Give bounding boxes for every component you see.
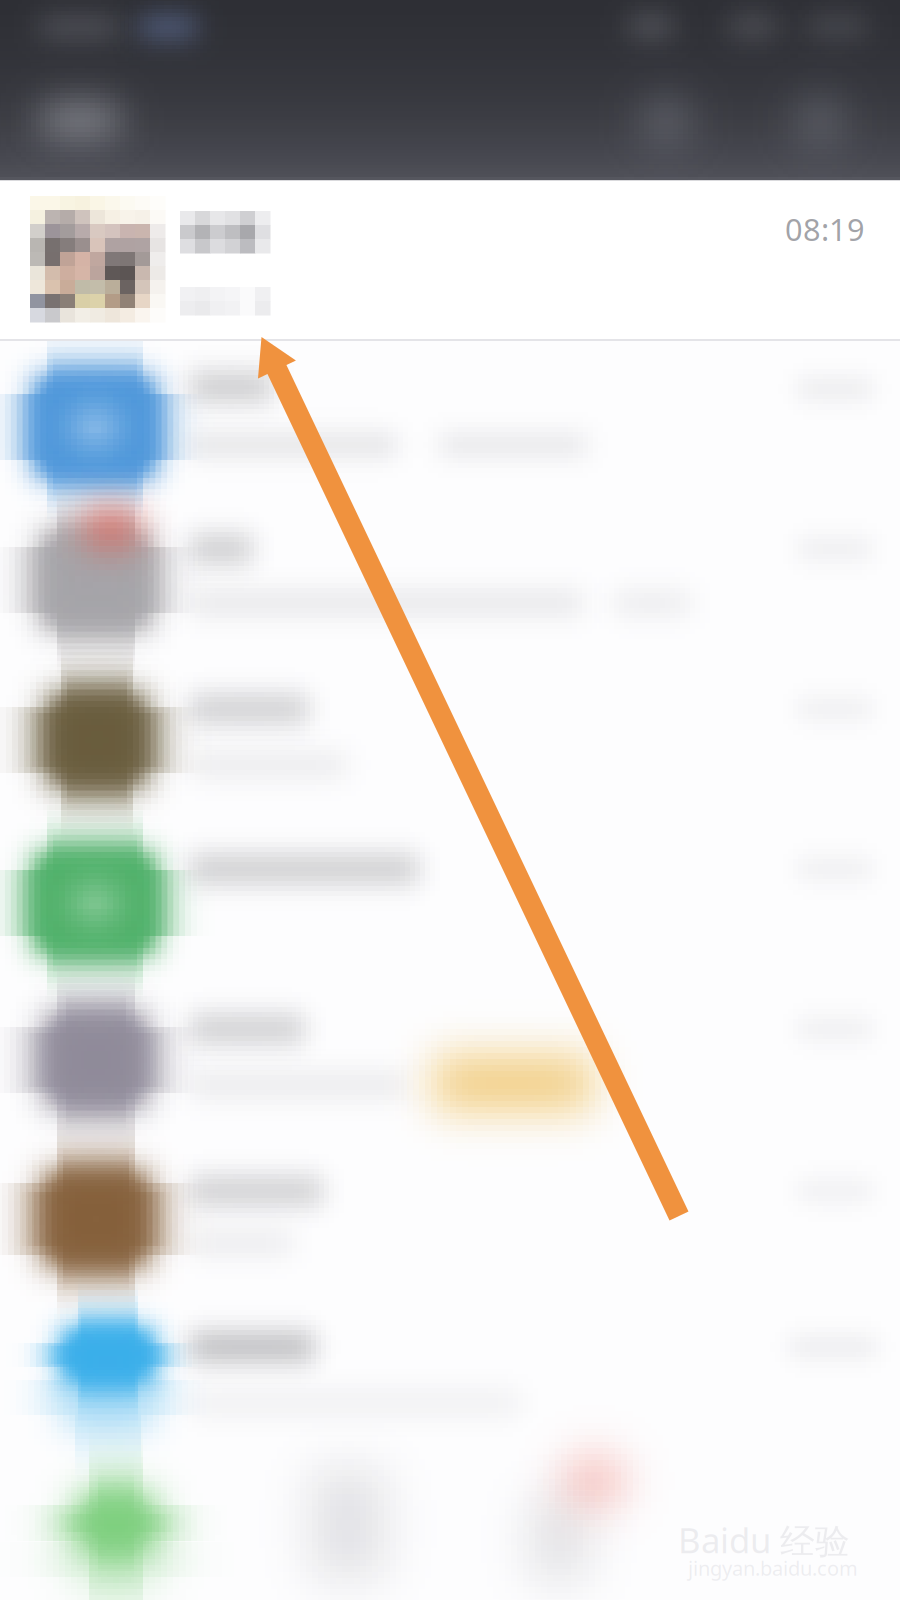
staticText: jingyan.baidu.com bbox=[688, 1555, 858, 1581]
staticText: 08:19 bbox=[785, 209, 865, 249]
button[interactable]: 08:19 bbox=[0, 0, 900, 160]
staticText: Baidu 经验 bbox=[678, 1517, 850, 1563]
